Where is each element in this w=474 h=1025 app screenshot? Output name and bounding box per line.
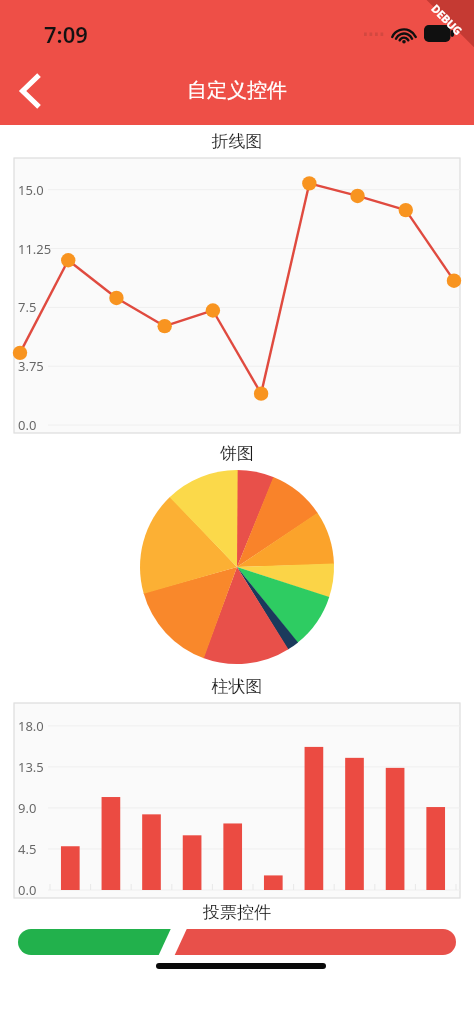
staticText: 0.0 [18,881,37,899]
staticText: 柱状图 [0,676,474,697]
staticText: 13.5 [18,758,44,776]
staticText: 投票控件 [0,902,474,923]
staticText: 饼图 [0,443,474,464]
staticText: 0.0 [18,416,37,434]
button[interactable]: 18.0 [14,703,460,898]
staticText: 9.0 [18,799,37,817]
staticText: 7.5 [18,298,37,316]
staticText: 15.0 [18,181,44,199]
staticText: 3.75 [18,357,44,375]
button[interactable]: Pie chart [140,470,334,664]
staticText: DEBUG [428,1,466,38]
button[interactable]: Vote [18,929,456,955]
staticText: 自定义控件 [0,78,474,103]
staticText: 4.5 [18,840,37,858]
button[interactable]: Back [6,66,56,116]
button[interactable]: 15.0 [14,158,460,433]
staticText: 11.25 [18,240,52,258]
staticText: 18.0 [18,717,44,735]
staticText: 7:09 [44,19,88,49]
staticText: 折线图 [0,131,474,152]
